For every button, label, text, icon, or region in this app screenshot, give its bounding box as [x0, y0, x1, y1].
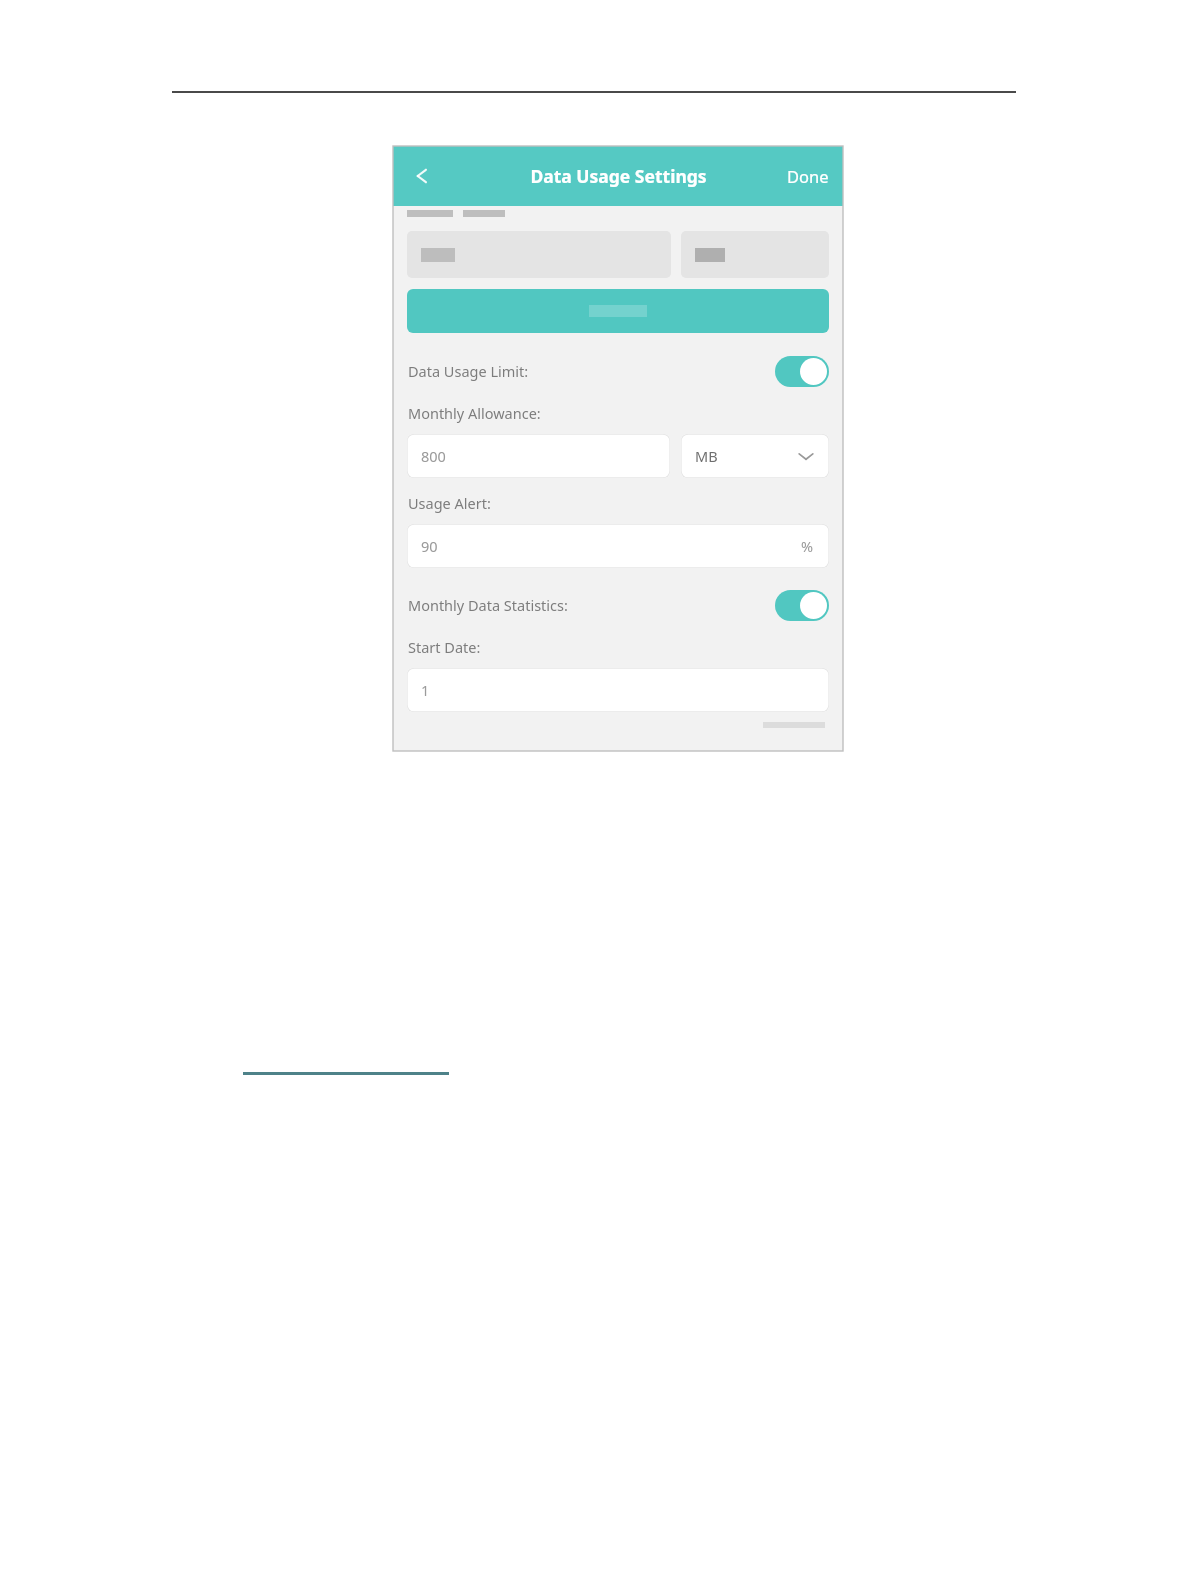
- staticText: 800: [421, 446, 446, 466]
- staticText: Done: [787, 165, 829, 187]
- staticText: Monthly Allowance:: [408, 403, 541, 423]
- button[interactable]: [407, 289, 829, 333]
- staticText: 90: [421, 536, 438, 556]
- staticText: Data Usage Settings: [530, 164, 707, 188]
- staticText: Monthly Data Statistics:: [408, 595, 568, 615]
- staticText: %: [801, 536, 814, 556]
- button[interactable]: 1: [407, 668, 829, 712]
- button[interactable]: [681, 231, 829, 278]
- button[interactable]: Toggle: [775, 356, 829, 387]
- other: Open unit dropdown: [795, 445, 817, 467]
- staticText: 1: [421, 680, 430, 700]
- staticText: Usage Alert:: [408, 493, 491, 513]
- button[interactable]: Done: [773, 151, 843, 201]
- button[interactable]: Toggle: [775, 590, 829, 621]
- staticText: Start Date:: [408, 637, 481, 657]
- button[interactable]: 800: [407, 434, 670, 478]
- button[interactable]: MB: [681, 434, 829, 478]
- button[interactable]: Data Usage Limit:: [393, 351, 843, 391]
- staticText: Data Usage Limit:: [408, 361, 529, 381]
- button[interactable]: [407, 231, 671, 278]
- staticText: MB: [695, 446, 718, 466]
- button[interactable]: 90: [407, 524, 829, 568]
- button[interactable]: Monthly Data Statistics:: [393, 585, 843, 625]
- button[interactable]: Back: [401, 154, 445, 198]
